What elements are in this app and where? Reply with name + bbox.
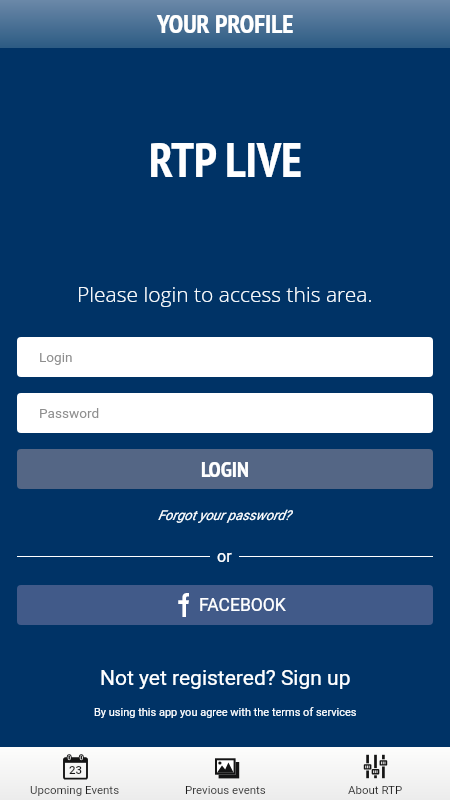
staticText: By using this app you agree with the ter…: [94, 706, 357, 719]
staticText: or: [217, 547, 232, 566]
button[interactable]: Previous events: [150, 747, 300, 800]
staticText: 23: [69, 763, 83, 776]
staticText: Forgot your password?: [158, 507, 292, 523]
button[interactable]: LOGIN: [17, 449, 433, 489]
staticText: Password: [39, 405, 100, 421]
staticText: LOGIN: [201, 455, 249, 483]
staticText: Please login to access this area.: [77, 280, 373, 309]
button[interactable]: Password: [17, 393, 433, 433]
button[interactable]: Login: [17, 337, 433, 377]
button[interactable]: Forgot your password?: [0, 503, 450, 527]
staticText: RTP LIVE: [149, 128, 302, 190]
staticText: YOUR PROFILE: [157, 7, 294, 41]
staticText: FACEBOOK: [199, 595, 286, 616]
button[interactable]: FACEBOOK: [17, 585, 433, 625]
button[interactable]: YOUR PROFILE: [0, 0, 450, 48]
staticText: Previous events: [185, 783, 266, 796]
staticText: About RTP: [348, 783, 403, 796]
button[interactable]: About RTP: [300, 747, 450, 800]
staticText: Login: [39, 349, 73, 365]
button[interactable]: Upcoming Events: [0, 747, 150, 800]
staticText: Not yet registered? Sign up: [100, 666, 351, 691]
button[interactable]: Not yet registered? Sign up: [0, 665, 450, 691]
staticText: Upcoming Events: [30, 783, 120, 796]
